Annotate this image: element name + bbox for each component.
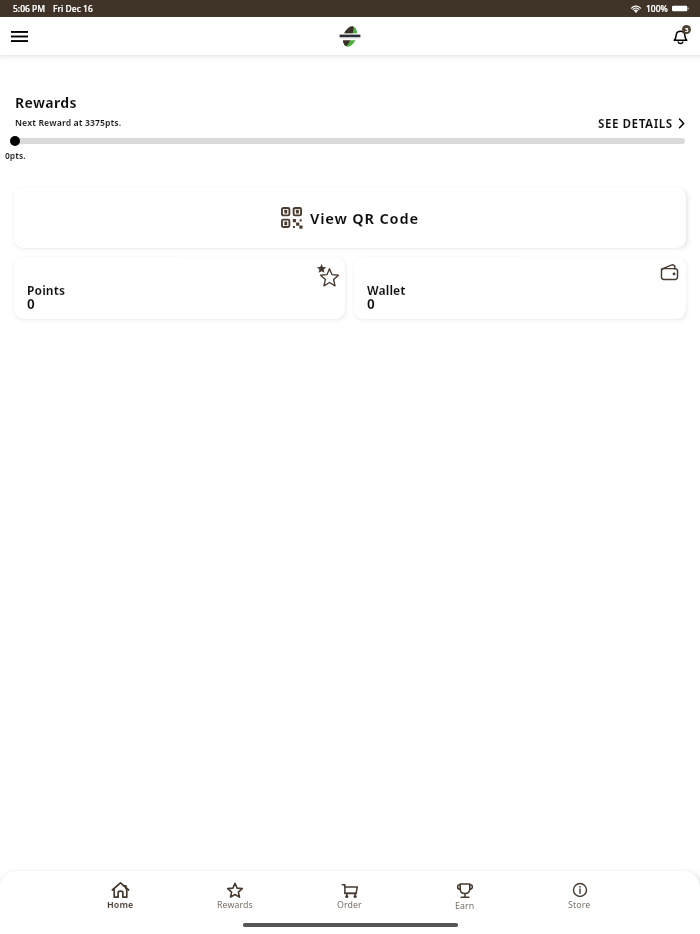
button[interactable]: Earn xyxy=(407,871,522,917)
staticText: Wallet xyxy=(367,282,406,298)
button[interactable]: SEE DETAILS xyxy=(598,113,686,129)
button[interactable]: Home xyxy=(63,871,177,917)
staticText: Next Reward at 3375pts. xyxy=(15,117,122,129)
button[interactable]: Points xyxy=(14,257,345,319)
staticText: Points xyxy=(27,282,66,298)
staticText: Home xyxy=(107,899,134,911)
button[interactable]: Menu xyxy=(3,20,36,53)
staticText: 0pts. xyxy=(5,150,26,162)
staticText: 100% xyxy=(646,3,668,15)
staticText: 0 xyxy=(367,298,375,312)
staticText: SEE DETAILS xyxy=(598,115,673,131)
staticText: Rewards xyxy=(15,93,77,112)
staticText: Rewards xyxy=(217,899,253,911)
button[interactable]: Wallet xyxy=(354,257,686,319)
button[interactable]: Rewards xyxy=(177,871,292,917)
staticText: Order xyxy=(337,899,362,911)
staticText: 5:06 PM xyxy=(13,3,46,15)
button[interactable]: View QR Code xyxy=(14,187,686,248)
staticText: Earn xyxy=(455,900,475,912)
staticText: 3 xyxy=(685,26,689,34)
button[interactable]: Order xyxy=(292,871,407,917)
button[interactable]: Notifications xyxy=(667,23,693,49)
staticText: 0 xyxy=(27,298,35,312)
staticText: Fri Dec 16 xyxy=(53,3,93,15)
button[interactable]: Store xyxy=(522,871,637,917)
staticText: Store xyxy=(568,899,591,911)
staticText: View QR Code xyxy=(310,208,419,228)
